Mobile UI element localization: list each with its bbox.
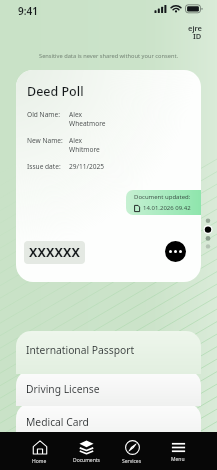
staticText: 9:41 [18,4,38,18]
button[interactable]: Driving License [16,370,201,406]
staticText: Deed Poll [27,83,84,100]
button[interactable]: Services [109,432,155,470]
staticText: Documents [73,457,100,464]
button[interactable]: Deed Poll [16,70,201,282]
staticText: New Name: [27,136,69,145]
staticText: Menu [171,456,185,463]
staticText: ejre [188,23,203,33]
staticText: Alex [69,136,82,145]
staticText: Driving License [26,382,100,396]
button[interactable]: Home [16,432,63,470]
staticText: Old Name: [27,110,69,119]
staticText: ID [193,31,202,41]
staticText: Document updated: [134,193,191,201]
staticText: Sensitive data is never shared without y… [0,52,217,60]
button[interactable]: More options [165,241,186,262]
staticText: Issue date: [27,162,69,171]
staticText: Whitmore [69,145,100,154]
button[interactable]: Menu [155,432,201,470]
button[interactable]: International Passport [16,331,201,374]
staticText: Medical Card [26,415,89,429]
staticText: Home [32,458,47,465]
staticText: Alex [69,110,82,119]
button[interactable]: Medical Card [16,403,201,432]
staticText: Services [122,458,142,465]
button[interactable]: Documents [63,432,109,470]
staticText: Wheatmore [69,119,106,128]
staticText: XXXXXX [29,244,80,261]
staticText: 29/11/2025 [69,162,105,171]
staticText: 14.01.2026 09.42 [143,204,191,212]
staticText: International Passport [26,343,135,357]
button[interactable]: Document updated: [126,190,201,215]
